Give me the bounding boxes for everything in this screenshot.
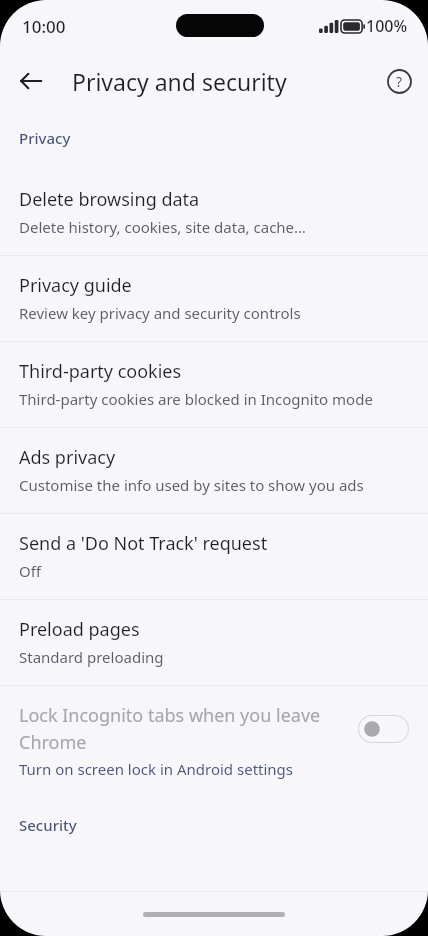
staticText: Off: [19, 561, 42, 581]
button[interactable]: Preload pages: [0, 600, 428, 685]
staticText: Third-party cookies: [19, 359, 182, 384]
staticText: Lock Incognito tabs when you leave: [19, 703, 321, 728]
staticText: Privacy and security: [72, 66, 287, 97]
button[interactable]: Delete browsing data: [0, 170, 428, 255]
button[interactable]: Back: [9, 59, 53, 103]
staticText: Delete browsing data: [19, 187, 200, 212]
button[interactable]: Lock Incognito tabs toggle: [358, 715, 409, 743]
staticText: Third-party cookies are blocked in Incog…: [19, 389, 373, 409]
staticText: Chrome: [19, 730, 87, 755]
button[interactable]: Lock Incognito tabs when you leave: [0, 686, 428, 793]
staticText: Privacy: [19, 128, 71, 148]
staticText: ?: [396, 72, 403, 91]
staticText: Review key privacy and security controls: [19, 303, 301, 323]
staticText: 100%: [366, 15, 408, 37]
staticText: Security: [19, 815, 77, 835]
button[interactable]: Help: [377, 59, 421, 103]
staticText: Ads privacy: [19, 445, 116, 470]
staticText: Customise the info used by sites to show…: [19, 475, 364, 495]
button[interactable]: Third-party cookies: [0, 342, 428, 427]
staticText: Turn on screen lock in Android settings: [19, 759, 294, 779]
button[interactable]: Send a 'Do Not Track' request: [0, 514, 428, 599]
staticText: Send a 'Do Not Track' request: [19, 531, 268, 556]
button[interactable]: Privacy guide: [0, 256, 428, 341]
staticText: 10:00: [22, 15, 66, 38]
staticText: Delete history, cookies, site data, cach…: [19, 217, 306, 237]
staticText: Preload pages: [19, 617, 140, 642]
staticText: Standard preloading: [19, 647, 164, 667]
staticText: Privacy guide: [19, 273, 132, 298]
button[interactable]: Ads privacy: [0, 428, 428, 513]
